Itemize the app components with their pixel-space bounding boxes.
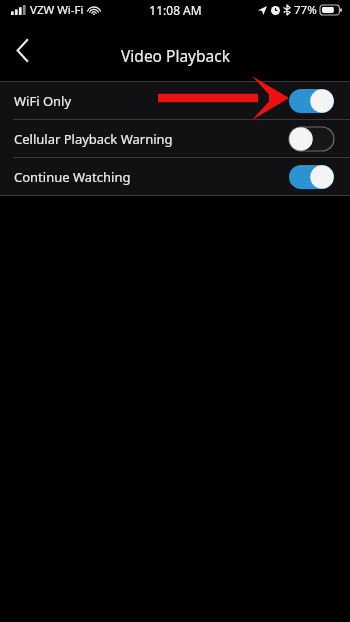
staticText: Video Playback — [121, 45, 230, 66]
button[interactable]: Cellular Playback Warning — [0, 120, 350, 157]
staticText: Cellular Playback Warning — [14, 130, 173, 148]
staticText: VZW Wi-Fi — [30, 2, 84, 18]
button[interactable]: Toggle on — [289, 165, 334, 189]
staticText: 11:08 AM — [149, 2, 202, 18]
button[interactable]: Toggle off — [289, 127, 334, 151]
button[interactable]: Back — [4, 32, 40, 68]
button[interactable]: WiFi Only — [0, 82, 350, 119]
button[interactable]: Continue Watching — [0, 158, 350, 195]
staticText: WiFi Only — [14, 92, 72, 110]
button[interactable]: Toggle on — [289, 89, 334, 113]
staticText: Continue Watching — [14, 168, 131, 186]
staticText: 77% — [294, 2, 317, 18]
